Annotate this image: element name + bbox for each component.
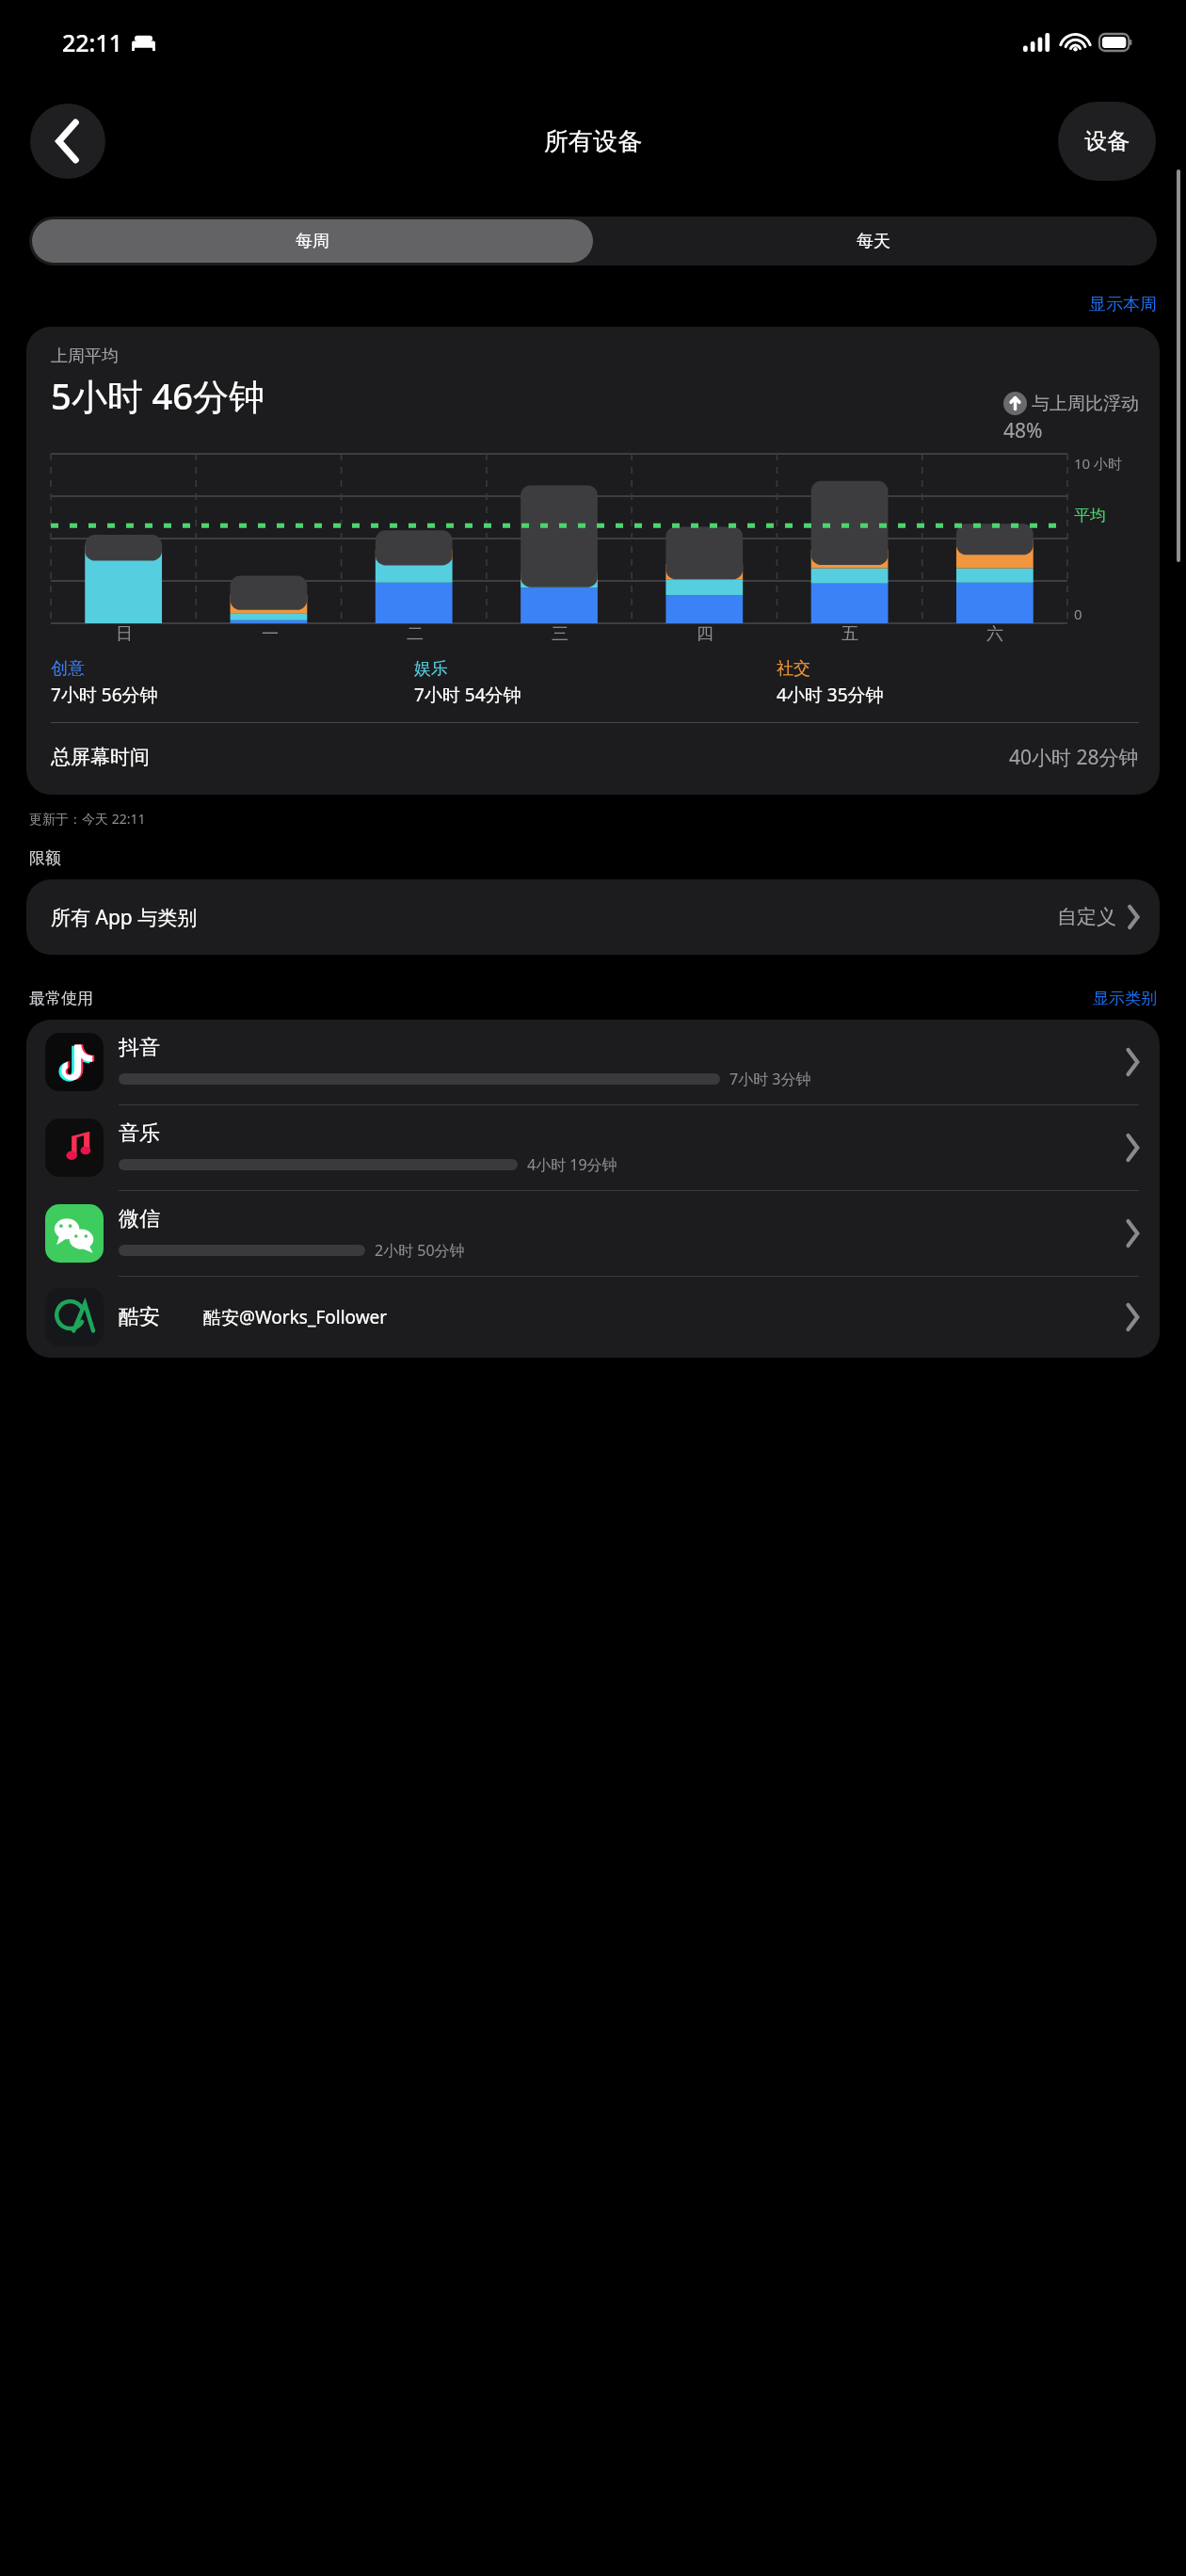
staticText: 48%	[1003, 417, 1043, 444]
staticText: 显示类别	[1093, 989, 1157, 1008]
staticText: 7小时 3分钟	[729, 1069, 811, 1089]
staticText: 创意	[51, 658, 85, 680]
staticText: 上周平均	[51, 346, 119, 367]
staticText: 三	[552, 623, 569, 645]
staticText: 酷安@Works_Follower	[203, 1305, 388, 1329]
staticText: 更新于：今天 22:11	[29, 810, 146, 828]
staticText: 每天	[857, 231, 890, 252]
staticText: 酷安	[119, 1304, 160, 1330]
staticText: 7小时 54分钟	[414, 683, 521, 707]
button[interactable]: 音乐	[26, 1105, 1160, 1190]
staticText: 五	[841, 623, 858, 645]
staticText: 娱乐	[414, 658, 448, 680]
button[interactable]: 每周	[32, 219, 593, 263]
staticText: 社交	[777, 658, 810, 680]
staticText: 7小时 56分钟	[51, 683, 158, 707]
button[interactable]: 显示本周	[1089, 294, 1157, 315]
staticText: 设备	[1084, 127, 1130, 155]
button[interactable]: 抖音	[26, 1020, 1160, 1104]
staticText: 最常使用	[29, 989, 93, 1008]
staticText: 微信	[119, 1206, 160, 1232]
button[interactable]: 返回	[30, 104, 105, 179]
staticText: 二	[407, 623, 424, 645]
staticText: 四	[697, 623, 713, 645]
staticText: 所有设备	[544, 126, 642, 157]
staticText: 4小时 35分钟	[777, 683, 884, 707]
staticText: 2小时 50分钟	[375, 1240, 465, 1261]
staticText: 22:11	[62, 26, 123, 58]
staticText: 10 小时	[1074, 454, 1123, 473]
staticText: 0	[1074, 604, 1082, 623]
button[interactable]: 每天	[593, 219, 1154, 263]
button[interactable]: 显示类别	[1093, 989, 1157, 1008]
staticText: 日	[116, 623, 133, 645]
staticText: 40小时 28分钟	[1009, 744, 1139, 771]
button[interactable]: 设备	[1058, 102, 1156, 181]
staticText: 抖音	[119, 1035, 160, 1061]
staticText: 5小时 46分钟	[51, 371, 265, 420]
staticText: 限额	[29, 848, 61, 868]
staticText: 所有 App 与类别	[51, 904, 198, 931]
button[interactable]: 微信	[26, 1191, 1160, 1276]
staticText: 六	[986, 623, 1003, 645]
staticText: 总屏幕时间	[51, 745, 150, 769]
staticText: 一	[262, 623, 279, 645]
staticText: 音乐	[119, 1120, 160, 1147]
button[interactable]: 酷安	[26, 1277, 1160, 1358]
button[interactable]: 上周平均	[26, 327, 1160, 795]
staticText: 4小时 19分钟	[527, 1154, 617, 1175]
staticText: 显示本周	[1089, 294, 1157, 315]
staticText: 平均	[1074, 506, 1106, 525]
staticText: 与上周比浮动	[1032, 393, 1139, 415]
staticText: 自定义	[1057, 905, 1116, 929]
button[interactable]: 所有 App 与类别	[26, 879, 1160, 955]
staticText: 每周	[296, 231, 329, 252]
